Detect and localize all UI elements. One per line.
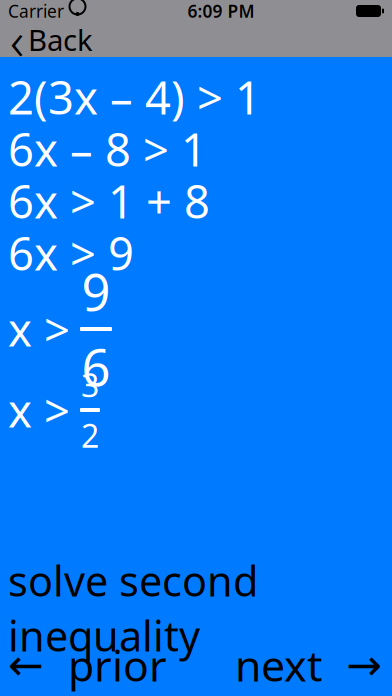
staticText: solve second inequality <box>8 553 258 663</box>
staticText <box>64 0 69 22</box>
staticText: 9 <box>81 258 110 325</box>
staticText: ‹ <box>10 4 24 75</box>
staticText: x > <box>8 380 70 440</box>
staticText: next <box>235 637 322 693</box>
staticText: 6:09 PM <box>187 0 254 22</box>
staticText: 2 <box>81 414 99 456</box>
staticText: 6x > 9 <box>8 223 134 283</box>
staticText: 6x – 8 > 1 <box>8 119 207 179</box>
button[interactable]: next <box>225 635 382 695</box>
staticText: 6x > 1 + 8 <box>8 171 210 231</box>
staticText: x > <box>8 299 70 359</box>
staticText: → <box>346 641 382 689</box>
button[interactable]: ‹ <box>0 22 105 57</box>
button[interactable]: ← <box>8 635 177 695</box>
staticText: Back <box>28 20 93 59</box>
staticText: Carrier <box>8 0 64 22</box>
staticText: ← <box>8 641 44 689</box>
staticText: 6 <box>81 333 110 400</box>
staticText: prior <box>68 637 167 693</box>
staticText: 3 <box>81 363 99 406</box>
staticText: 2(3x – 4) > 1 <box>8 67 261 127</box>
